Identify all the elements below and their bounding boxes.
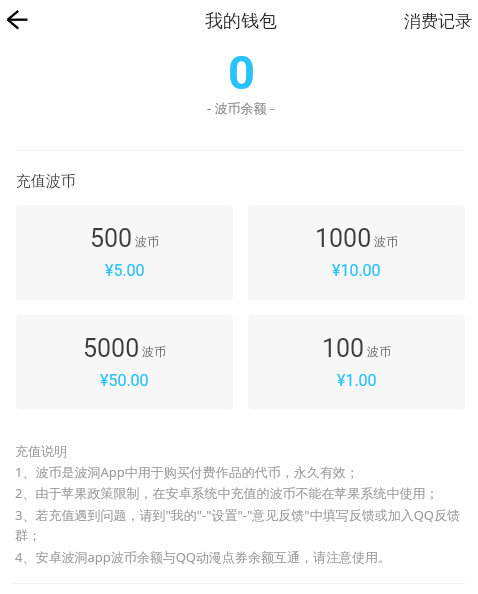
staticText: 3、若充值遇到问题，请到"我的"-"设置"-"意见反馈"中填写反馈或加入QQ反馈 xyxy=(15,506,460,524)
staticText: ¥50.00 xyxy=(100,371,149,390)
button[interactable]: 5000 xyxy=(16,315,233,410)
button[interactable]: 100 xyxy=(248,315,465,410)
staticText: 波币 xyxy=(142,344,166,359)
staticText: 500 xyxy=(90,224,133,253)
staticText: ¥5.00 xyxy=(105,261,145,280)
staticText: ¥1.00 xyxy=(337,371,377,390)
staticText: 0 xyxy=(228,45,255,100)
staticText: 4、安卓波洞app波币余额与QQ动漫点券余额互通，请注意使用。 xyxy=(15,548,392,566)
button[interactable]: 500 xyxy=(16,205,233,300)
staticText: 5000 xyxy=(83,334,140,363)
button[interactable]: 消费记录 xyxy=(392,0,478,41)
staticText: 2、由于苹果政策限制，在安卓系统中充值的波币不能在苹果系统中使用； xyxy=(15,484,439,502)
staticText: 波币 xyxy=(367,344,391,359)
button[interactable]: Back xyxy=(0,0,42,42)
staticText: 1000 xyxy=(315,224,372,253)
staticText: 消费记录 xyxy=(404,11,472,32)
staticText: 100 xyxy=(322,334,365,363)
staticText: 1、波币是波洞App中用于购买付费作品的代币，永久有效； xyxy=(15,463,359,481)
staticText: 我的钱包 xyxy=(205,10,277,33)
staticText: 充值说明 xyxy=(15,443,67,459)
staticText: 群； xyxy=(15,527,41,543)
staticText: 波币 xyxy=(135,234,159,249)
staticText: ¥10.00 xyxy=(332,261,381,280)
staticText: 波币 xyxy=(374,234,398,249)
staticText: - 波币余额 - xyxy=(207,99,275,117)
staticText: 充值波币 xyxy=(16,172,76,191)
button[interactable]: 1000 xyxy=(248,205,465,300)
